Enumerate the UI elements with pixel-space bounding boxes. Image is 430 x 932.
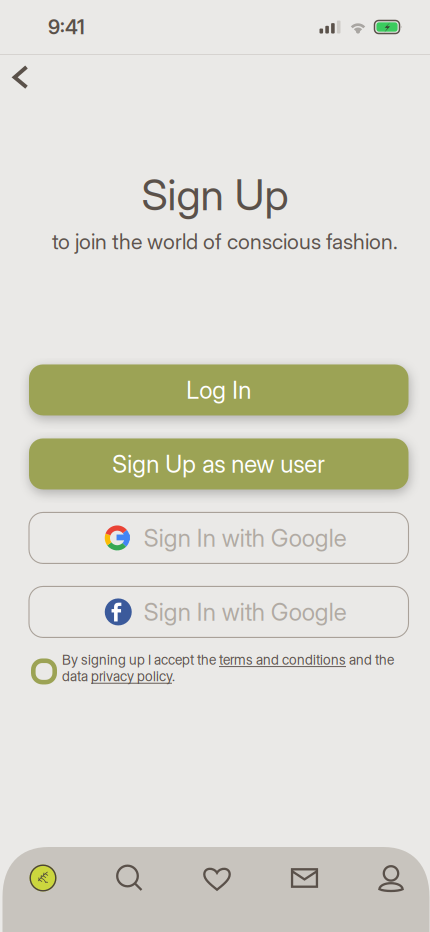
button[interactable]: Log In <box>29 364 408 415</box>
staticText: to join the world of conscious fashion. <box>52 229 398 254</box>
button[interactable]: Home <box>0 847 86 909</box>
staticText: Sign In with Google <box>144 523 347 552</box>
staticText: Log In <box>186 375 251 404</box>
button[interactable]: Sign In with Google <box>29 512 408 563</box>
button[interactable]: Sign Up as new user <box>29 438 408 489</box>
staticText: Sign Up as new user <box>112 449 325 478</box>
staticText: Sign In with Google <box>144 597 347 626</box>
button[interactable]: Search <box>86 847 173 909</box>
button[interactable]: Back <box>0 55 44 100</box>
staticText: Sign Up <box>141 169 288 221</box>
button[interactable]: Messages <box>261 847 348 909</box>
staticText: By signing up I accept the terms and con… <box>62 651 394 685</box>
staticText: 9:41 <box>48 15 85 39</box>
button[interactable]: Accept terms and conditions <box>31 651 57 684</box>
button[interactable]: Sign In with Google <box>29 586 408 637</box>
button[interactable]: Profile <box>348 847 430 909</box>
button[interactable]: Favorites <box>173 847 261 909</box>
